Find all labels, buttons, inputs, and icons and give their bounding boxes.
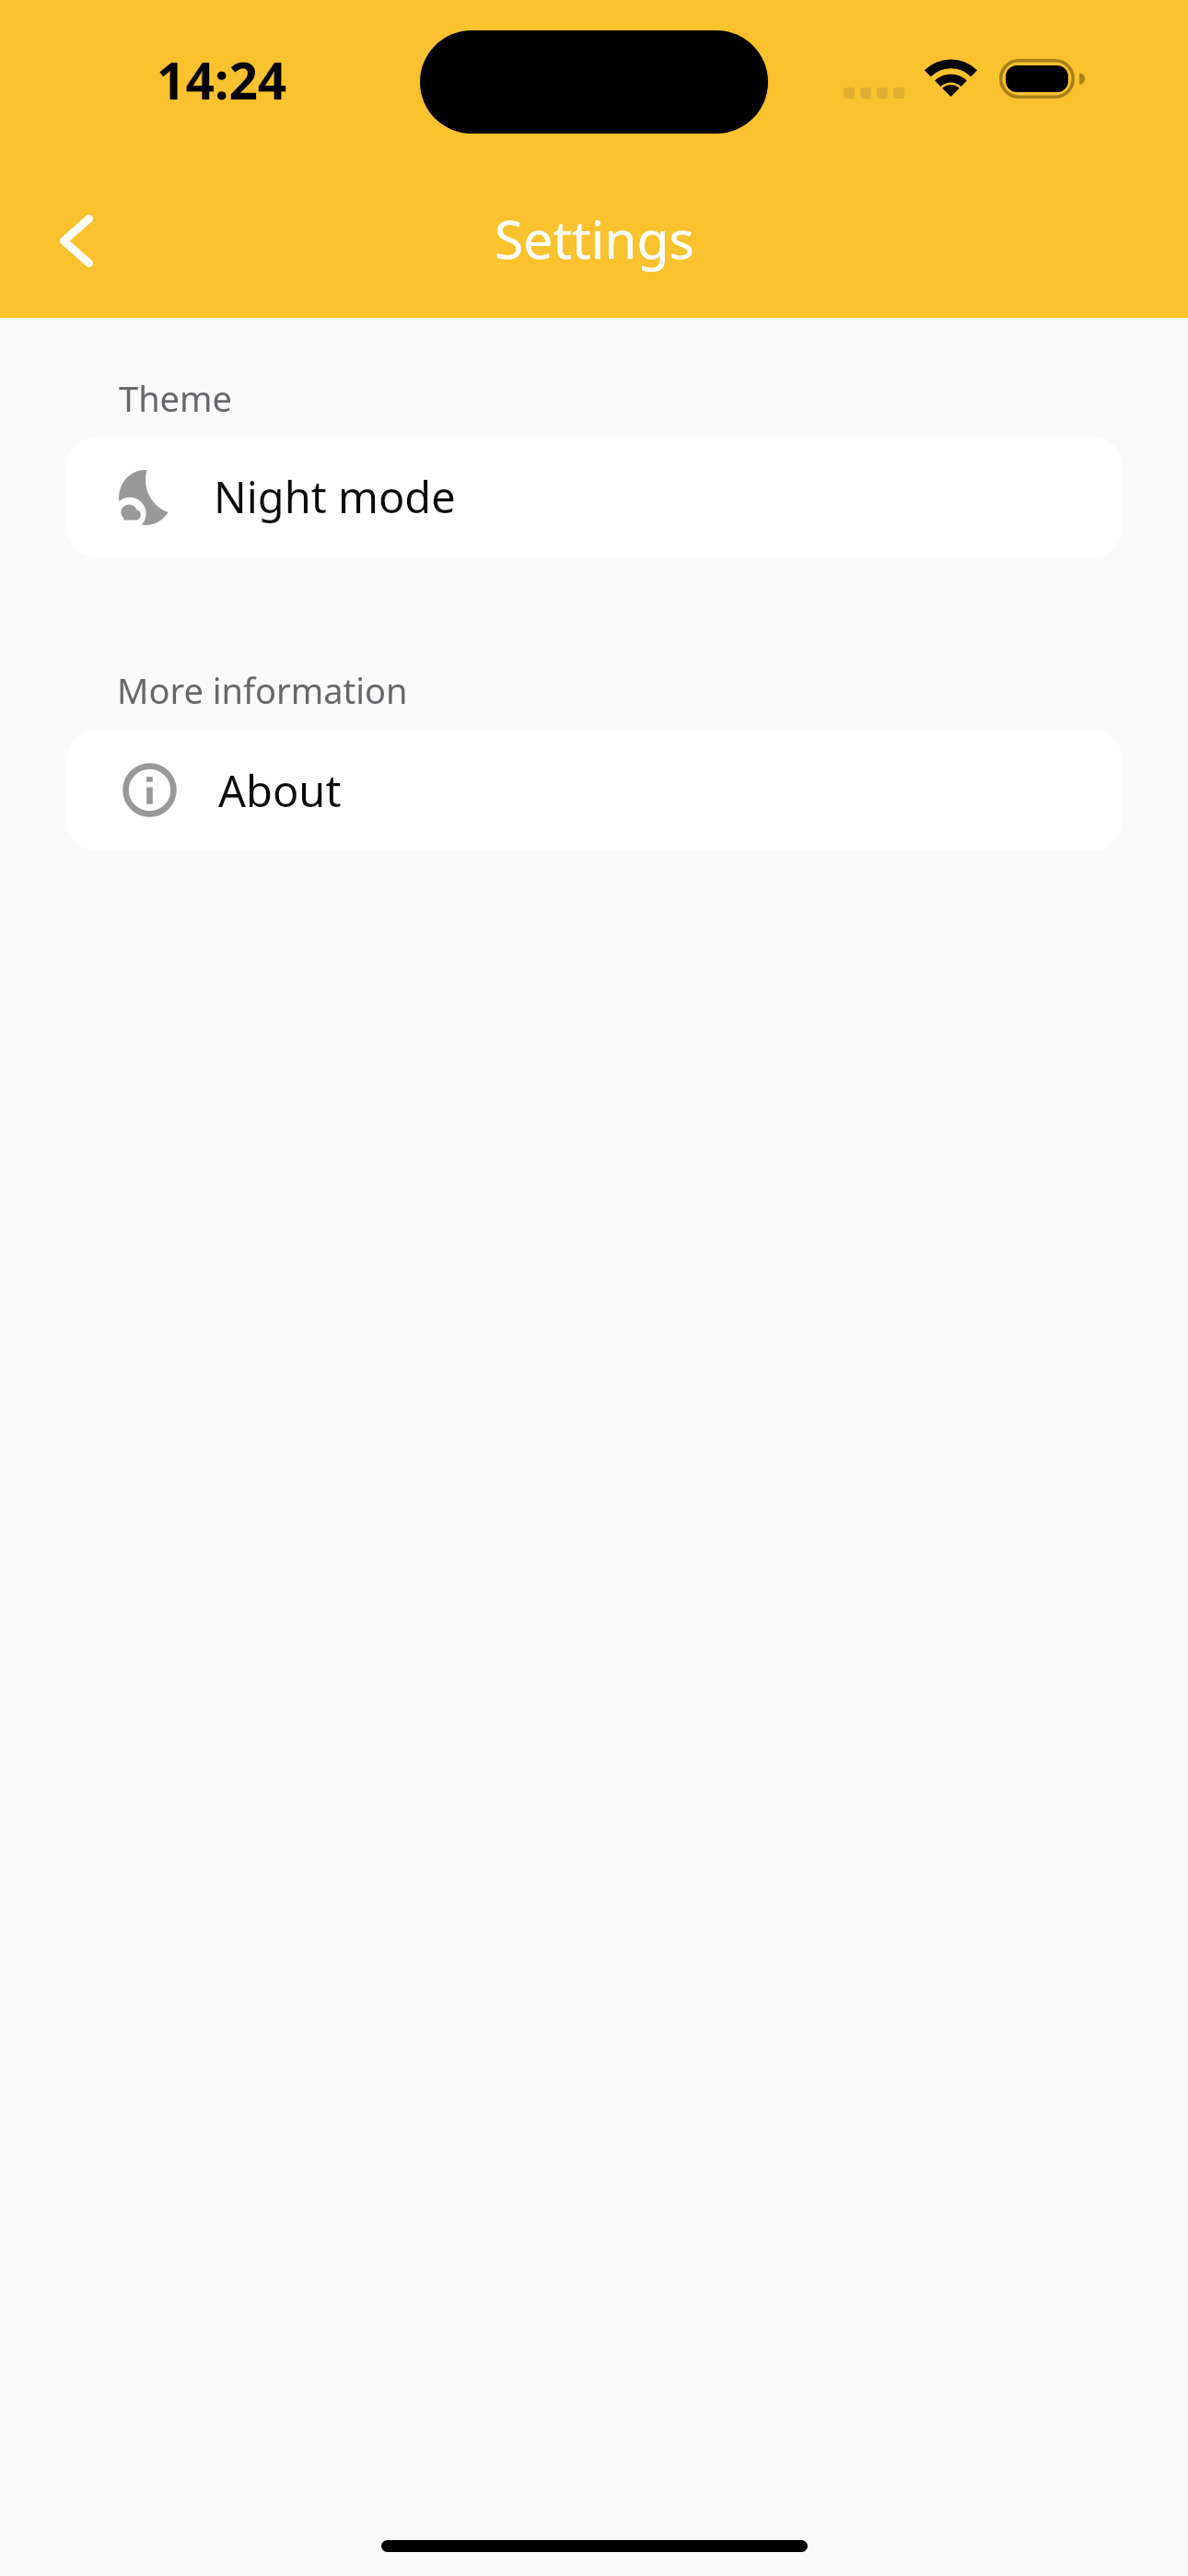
- staticText: Theme: [119, 374, 233, 422]
- staticText: 14:24: [157, 45, 287, 114]
- button[interactable]: Back: [17, 181, 136, 300]
- staticText: More information: [117, 666, 408, 714]
- button[interactable]: About: [67, 730, 1122, 850]
- staticText: Night mode: [214, 467, 456, 526]
- staticText: Settings: [495, 203, 694, 275]
- staticText: About: [218, 761, 342, 820]
- button[interactable]: Night mode: [67, 437, 1122, 557]
